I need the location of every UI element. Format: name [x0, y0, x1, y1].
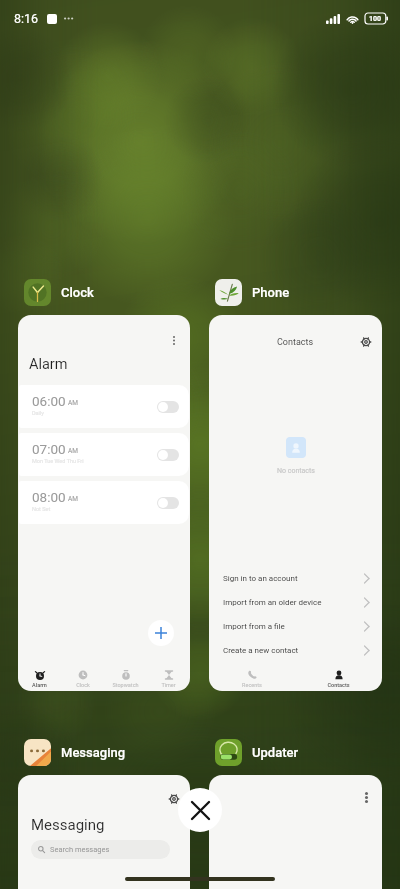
button[interactable]: Messaging: [24, 739, 126, 766]
button[interactable]: Import from a file: [209, 614, 382, 638]
staticText: Phone: [252, 285, 290, 300]
staticText: Search messages: [50, 845, 110, 854]
button[interactable]: More options: [164, 330, 184, 350]
staticText: Import from an older device: [223, 598, 322, 607]
button[interactable]: More options: [357, 788, 375, 806]
button[interactable]: Timer: [147, 665, 190, 688]
button[interactable]: Contacts: [295, 665, 382, 688]
staticText: Not Set: [32, 506, 51, 512]
button[interactable]: Toggle alarm: [157, 449, 179, 461]
button[interactable]: Add alarm: [148, 620, 174, 646]
staticText: AM: [68, 495, 78, 503]
button[interactable]: Sign in to an account: [209, 566, 382, 590]
button[interactable]: Phone: [215, 279, 290, 306]
button[interactable]: Search messages: [31, 840, 170, 859]
button[interactable]: Stopwatch: [104, 665, 147, 688]
staticText: Alarm: [29, 356, 68, 373]
staticText: 8:16: [14, 11, 39, 26]
staticText: Daily: [32, 410, 44, 416]
button[interactable]: Recents: [209, 665, 295, 688]
staticText: 07:00: [32, 441, 66, 457]
staticText: Contacts: [277, 337, 314, 348]
staticText: Create a new contact: [223, 646, 299, 655]
staticText: Updater: [252, 745, 299, 760]
staticText: Clock: [61, 285, 94, 300]
staticText: Messaging: [31, 816, 105, 834]
button[interactable]: Toggle alarm: [157, 497, 179, 509]
staticText: Messaging: [61, 745, 126, 760]
button[interactable]: Contacts: [209, 315, 382, 691]
staticText: Import from a file: [223, 622, 285, 631]
staticText: AM: [68, 399, 78, 407]
staticText: 06:00: [32, 393, 66, 409]
staticText: Stopwatch: [112, 682, 139, 688]
staticText: Timer: [161, 682, 176, 688]
button[interactable]: Clear all: [178, 788, 222, 832]
button[interactable]: Settings: [18, 775, 190, 889]
button[interactable]: 08:00: [19, 481, 189, 524]
button[interactable]: Create a new contact: [209, 638, 382, 662]
staticText: Recents: [242, 682, 262, 688]
button[interactable]: Import from an older device: [209, 590, 382, 614]
staticText: Mon Tue Wed Thu Fri: [32, 458, 84, 464]
button[interactable]: More options: [209, 775, 382, 889]
staticText: No contacts: [277, 467, 315, 475]
button[interactable]: 07:00: [19, 433, 189, 476]
button[interactable]: Settings: [357, 333, 375, 351]
button[interactable]: Updater: [215, 739, 299, 766]
button[interactable]: Clock: [61, 665, 104, 688]
button[interactable]: More options: [18, 315, 190, 691]
button[interactable]: Alarm: [18, 665, 61, 688]
button[interactable]: Settings: [165, 790, 183, 808]
staticText: Sign in to an account: [223, 574, 298, 583]
button[interactable]: 06:00: [19, 385, 189, 428]
button[interactable]: Toggle alarm: [157, 401, 179, 413]
staticText: Clock: [76, 682, 90, 688]
staticText: 08:00: [32, 489, 66, 505]
button[interactable]: Clock: [24, 279, 94, 306]
staticText: Alarm: [32, 682, 47, 688]
staticText: 100: [369, 15, 382, 23]
staticText: Contacts: [327, 682, 350, 688]
staticText: AM: [68, 447, 78, 455]
